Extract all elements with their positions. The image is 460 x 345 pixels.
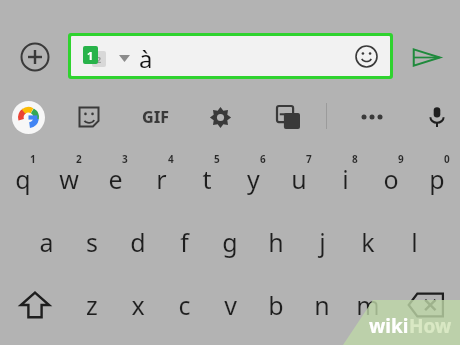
button[interactable]: Voice input — [419, 99, 455, 135]
button[interactable]: z — [69, 276, 115, 334]
button[interactable]: b — [253, 276, 299, 334]
button[interactable]: i — [322, 150, 368, 208]
staticText: g — [222, 225, 238, 259]
button[interactable]: Send — [406, 37, 446, 77]
button[interactable]: f — [161, 213, 207, 271]
button[interactable]: j — [299, 213, 345, 271]
button[interactable]: Google — [10, 99, 46, 135]
staticText: j — [319, 225, 326, 259]
button[interactable]: s — [69, 213, 115, 271]
button[interactable]: Stickers — [71, 99, 107, 135]
button[interactable]: h — [253, 213, 299, 271]
staticText: How — [409, 313, 452, 339]
staticText: 8 — [352, 152, 358, 166]
button[interactable]: w — [46, 150, 92, 208]
button[interactable]: d — [115, 213, 161, 271]
button[interactable]: Backspace — [394, 276, 458, 334]
staticText: GIF — [142, 106, 170, 128]
staticText: wiki — [369, 313, 409, 339]
button[interactable]: Attach — [17, 39, 53, 75]
button[interactable]: Shift — [2, 276, 68, 334]
staticText: c — [178, 288, 191, 322]
staticText: 2 — [76, 152, 82, 166]
button[interactable]: r — [138, 150, 184, 208]
staticText: e — [108, 162, 123, 196]
staticText: 1 — [30, 152, 36, 166]
staticText: u — [291, 162, 307, 196]
button[interactable]: t — [184, 150, 230, 208]
button[interactable]: q — [0, 150, 46, 208]
staticText: q — [15, 162, 31, 196]
button[interactable]: g — [207, 213, 253, 271]
staticText: v — [224, 288, 237, 322]
staticText: a — [39, 225, 54, 259]
button[interactable]: u — [276, 150, 322, 208]
staticText: o — [383, 162, 399, 196]
staticText: h — [268, 225, 284, 259]
staticText: b — [268, 288, 284, 322]
button[interactable]: Translate — [270, 99, 306, 135]
button[interactable]: a — [23, 213, 69, 271]
staticText: 6 — [260, 152, 266, 166]
staticText: r — [156, 162, 167, 196]
staticText: 4 — [168, 152, 174, 166]
staticText: i — [342, 162, 349, 196]
button[interactable]: Emoji — [352, 42, 380, 70]
button[interactable]: Settings — [202, 99, 238, 135]
button[interactable]: n — [299, 276, 345, 334]
button[interactable]: y — [230, 150, 276, 208]
button[interactable]: e — [92, 150, 138, 208]
button[interactable]: x — [115, 276, 161, 334]
staticText: p — [429, 162, 445, 196]
staticText: 7 — [306, 152, 312, 166]
button[interactable]: k — [345, 213, 391, 271]
staticText: l — [411, 225, 418, 259]
button[interactable]: m — [345, 276, 391, 334]
button[interactable]: GIF — [136, 99, 176, 135]
button[interactable]: More options — [354, 99, 390, 135]
button[interactable]: v — [207, 276, 253, 334]
staticText: 9 — [398, 152, 404, 166]
button[interactable]: o — [368, 150, 414, 208]
staticText: 3 — [122, 152, 128, 166]
staticText: 5 — [214, 152, 220, 166]
staticText: n — [314, 288, 330, 322]
staticText: f — [180, 225, 189, 259]
staticText: k — [361, 225, 375, 259]
staticText: z — [86, 288, 98, 322]
staticText: s — [86, 225, 98, 259]
staticText: 2 — [96, 53, 102, 65]
button[interactable]: l — [391, 213, 437, 271]
staticText: d — [130, 225, 146, 259]
staticText: x — [131, 288, 145, 322]
button[interactable]: 2 — [71, 36, 390, 76]
button[interactable]: p — [414, 150, 460, 208]
staticText: m — [356, 288, 380, 322]
staticText: 0 — [444, 152, 450, 166]
staticText: y — [247, 162, 260, 196]
button[interactable]: c — [161, 276, 207, 334]
staticText: à — [139, 42, 153, 75]
staticText: 1 — [87, 48, 94, 63]
staticText: w — [59, 162, 79, 196]
staticText: t — [202, 162, 212, 196]
